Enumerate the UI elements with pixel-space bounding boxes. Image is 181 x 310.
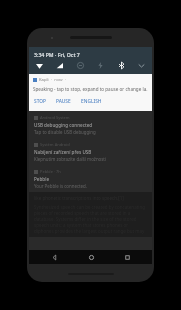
button[interactable]: Recents [116,250,138,264]
button[interactable]: STOP [33,97,47,106]
staticText: Tap to disable USB debugging [34,129,96,135]
staticText: Klepnutím zobrazíte další možnosti [34,156,107,162]
staticText: STOP [34,98,46,105]
staticText: 3:34 PM · Fri, Oct 7 [34,51,80,58]
staticText: Pebble · 7h [40,169,61,174]
staticText: Android System [40,115,70,120]
button[interactable]: Android System [29,111,152,138]
button[interactable]: Bluetooth [116,60,127,71]
staticText: Systém Android [40,142,70,147]
button[interactable]: Do not disturb [75,60,86,71]
staticText: PAUSE [56,98,71,105]
staticText: USB debugging connected [34,122,93,128]
button[interactable]: Systém Android [29,138,152,165]
button[interactable]: Flashlight [95,60,106,71]
staticText: Pebble [34,176,50,182]
button[interactable]: Wi-Fi [34,60,45,71]
button[interactable]: Back [43,250,65,264]
button[interactable]: ENGLISH [80,97,103,106]
staticText: Kapli [39,77,49,83]
button[interactable]: Kapli [29,74,152,111]
button[interactable]: Pebble · 7h [29,165,152,192]
staticText: ENGLISH [81,98,102,105]
button[interactable]: Home [80,250,102,264]
button[interactable]: PAUSE [55,97,72,106]
staticText: · now · [51,77,66,83]
staticText: Nabíjení zařízení přes USB [34,149,92,155]
staticText: Speaking - tap to stop, expand to pause … [33,86,148,92]
button[interactable]: Mobile signal [54,60,65,71]
staticText: Your Pebble is connected. [34,183,87,189]
button[interactable]: Expand quick settings [136,60,147,71]
